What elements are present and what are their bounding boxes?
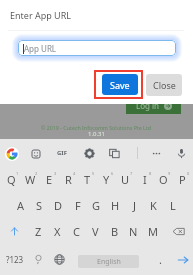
staticText: D <box>54 198 63 213</box>
staticText: E <box>46 172 53 187</box>
staticText: N <box>129 224 138 239</box>
staticText: 6 <box>111 171 114 176</box>
staticText: Q <box>7 172 16 187</box>
staticText: 1 <box>16 171 19 176</box>
button[interactable]: M <box>143 218 162 244</box>
button[interactable]: V <box>86 218 105 244</box>
staticText: ?123 <box>6 254 24 265</box>
staticText: I <box>143 172 147 187</box>
button[interactable]: Stickers <box>29 147 42 160</box>
staticText: Z <box>35 224 42 239</box>
staticText: L <box>170 198 176 213</box>
button[interactable]: Settings <box>83 147 96 160</box>
staticText: 3 <box>54 171 57 176</box>
staticText: Close <box>153 79 176 91</box>
button[interactable]: A <box>11 192 30 218</box>
button[interactable]: L <box>163 192 182 218</box>
button[interactable]: App URL <box>18 40 176 56</box>
button[interactable]: R <box>59 166 78 192</box>
button[interactable]: GIF <box>55 147 69 159</box>
button[interactable]: X <box>48 218 67 244</box>
button[interactable]: Shift <box>4 218 25 244</box>
staticText: G <box>92 198 101 213</box>
button[interactable]: Clipboard <box>108 147 121 160</box>
staticText: M <box>148 224 158 239</box>
staticText: C <box>73 224 80 239</box>
staticText: Enter App URL <box>10 9 72 21</box>
staticText: S <box>36 198 43 213</box>
button[interactable]: Enter <box>174 244 192 275</box>
button[interactable]: U <box>116 166 135 192</box>
staticText: T <box>84 172 91 187</box>
button[interactable]: Voice input <box>175 147 188 160</box>
button[interactable]: K <box>144 192 163 218</box>
button[interactable]: J <box>125 192 144 218</box>
button[interactable]: ?123 <box>3 244 26 275</box>
staticText: O <box>159 172 168 187</box>
staticText: H <box>111 198 120 213</box>
button[interactable]: D <box>49 192 68 218</box>
staticText: 8 <box>149 171 152 176</box>
staticText: K <box>150 198 157 213</box>
staticText: 7 <box>130 171 133 176</box>
staticText: V <box>92 224 99 239</box>
staticText: 2 <box>35 171 38 176</box>
button[interactable]: Emoji <box>31 244 45 275</box>
staticText: R <box>65 172 72 187</box>
button[interactable]: . <box>150 244 170 275</box>
button[interactable]: P <box>173 166 192 192</box>
staticText: B <box>111 224 119 239</box>
staticText: . <box>159 252 162 267</box>
button[interactable]: Backspace <box>168 218 189 244</box>
button[interactable]: F <box>68 192 87 218</box>
button[interactable]: O <box>154 166 173 192</box>
button[interactable]: G <box>87 192 106 218</box>
staticText: Y <box>103 172 110 187</box>
staticText: J <box>133 198 137 213</box>
button[interactable]: Save <box>102 74 138 95</box>
button[interactable]: E <box>40 166 59 192</box>
button[interactable]: Close <box>146 74 182 96</box>
staticText: Save <box>110 79 130 91</box>
staticText: 0 <box>187 171 190 176</box>
button[interactable]: N <box>124 218 143 244</box>
staticText: GIF <box>57 149 67 157</box>
button[interactable]: Google search <box>5 147 19 161</box>
staticText: U <box>121 172 130 187</box>
button[interactable]: Q <box>2 166 21 192</box>
button[interactable]: I <box>135 166 154 192</box>
staticText: A <box>17 198 25 213</box>
staticText: English <box>97 257 121 267</box>
staticText: 4 <box>73 171 76 176</box>
staticText: 5 <box>92 171 95 176</box>
staticText: © 2019 - Cutech Infocomm Solutions Pte L… <box>41 124 152 131</box>
button[interactable]: H <box>106 192 125 218</box>
staticText: P <box>179 172 186 187</box>
staticText: Log in <box>136 100 160 111</box>
button[interactable]: C <box>67 218 86 244</box>
button[interactable]: W <box>21 166 40 192</box>
staticText: App URL <box>24 43 57 54</box>
button[interactable]: Y <box>97 166 116 192</box>
staticText: F <box>75 198 81 213</box>
button[interactable]: B <box>105 218 124 244</box>
button[interactable]: S <box>30 192 49 218</box>
staticText: 9 <box>168 171 171 176</box>
button[interactable]: English <box>78 255 139 268</box>
button[interactable]: Z <box>29 218 48 244</box>
button[interactable]: More options <box>150 147 163 160</box>
staticText: X <box>54 224 61 239</box>
staticText: W <box>25 172 36 187</box>
staticText: 1.0.31 <box>88 130 105 138</box>
button[interactable]: T <box>78 166 97 192</box>
button[interactable]: Change language <box>51 244 67 275</box>
